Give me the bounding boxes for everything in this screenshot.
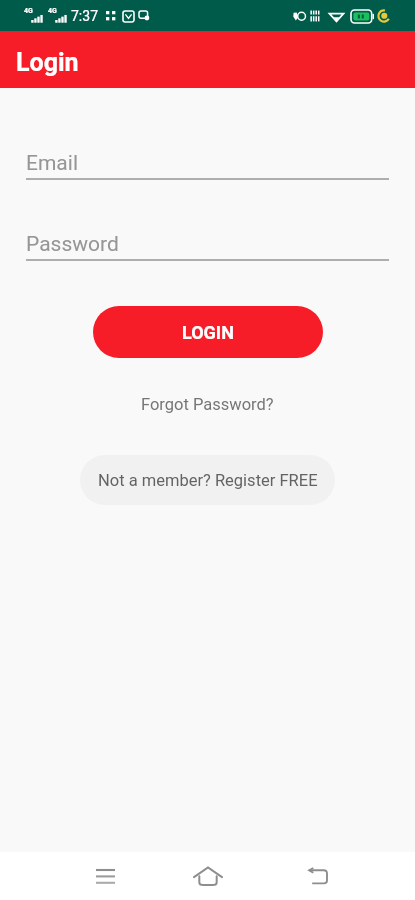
button[interactable]: Password: [26, 227, 389, 261]
staticText: 4G: [24, 7, 33, 15]
staticText: Password: [26, 232, 119, 257]
button[interactable]: Home: [178, 852, 238, 900]
staticText: 7:37: [71, 8, 98, 24]
button[interactable]: Back: [287, 852, 347, 900]
staticText: 4G: [48, 7, 57, 15]
staticText: Login: [16, 48, 79, 77]
button[interactable]: Not a member? Register FREE: [80, 455, 335, 505]
button[interactable]: Email: [26, 146, 389, 180]
button[interactable]: LOGIN: [93, 306, 323, 358]
button[interactable]: Forgot Password?: [131, 389, 284, 420]
staticText: Email: [26, 151, 78, 176]
staticText: Forgot Password?: [141, 395, 274, 414]
staticText: Not a member? Register FREE: [98, 471, 318, 490]
staticText: LOGIN: [182, 322, 234, 343]
button[interactable]: Recent apps: [75, 852, 135, 900]
